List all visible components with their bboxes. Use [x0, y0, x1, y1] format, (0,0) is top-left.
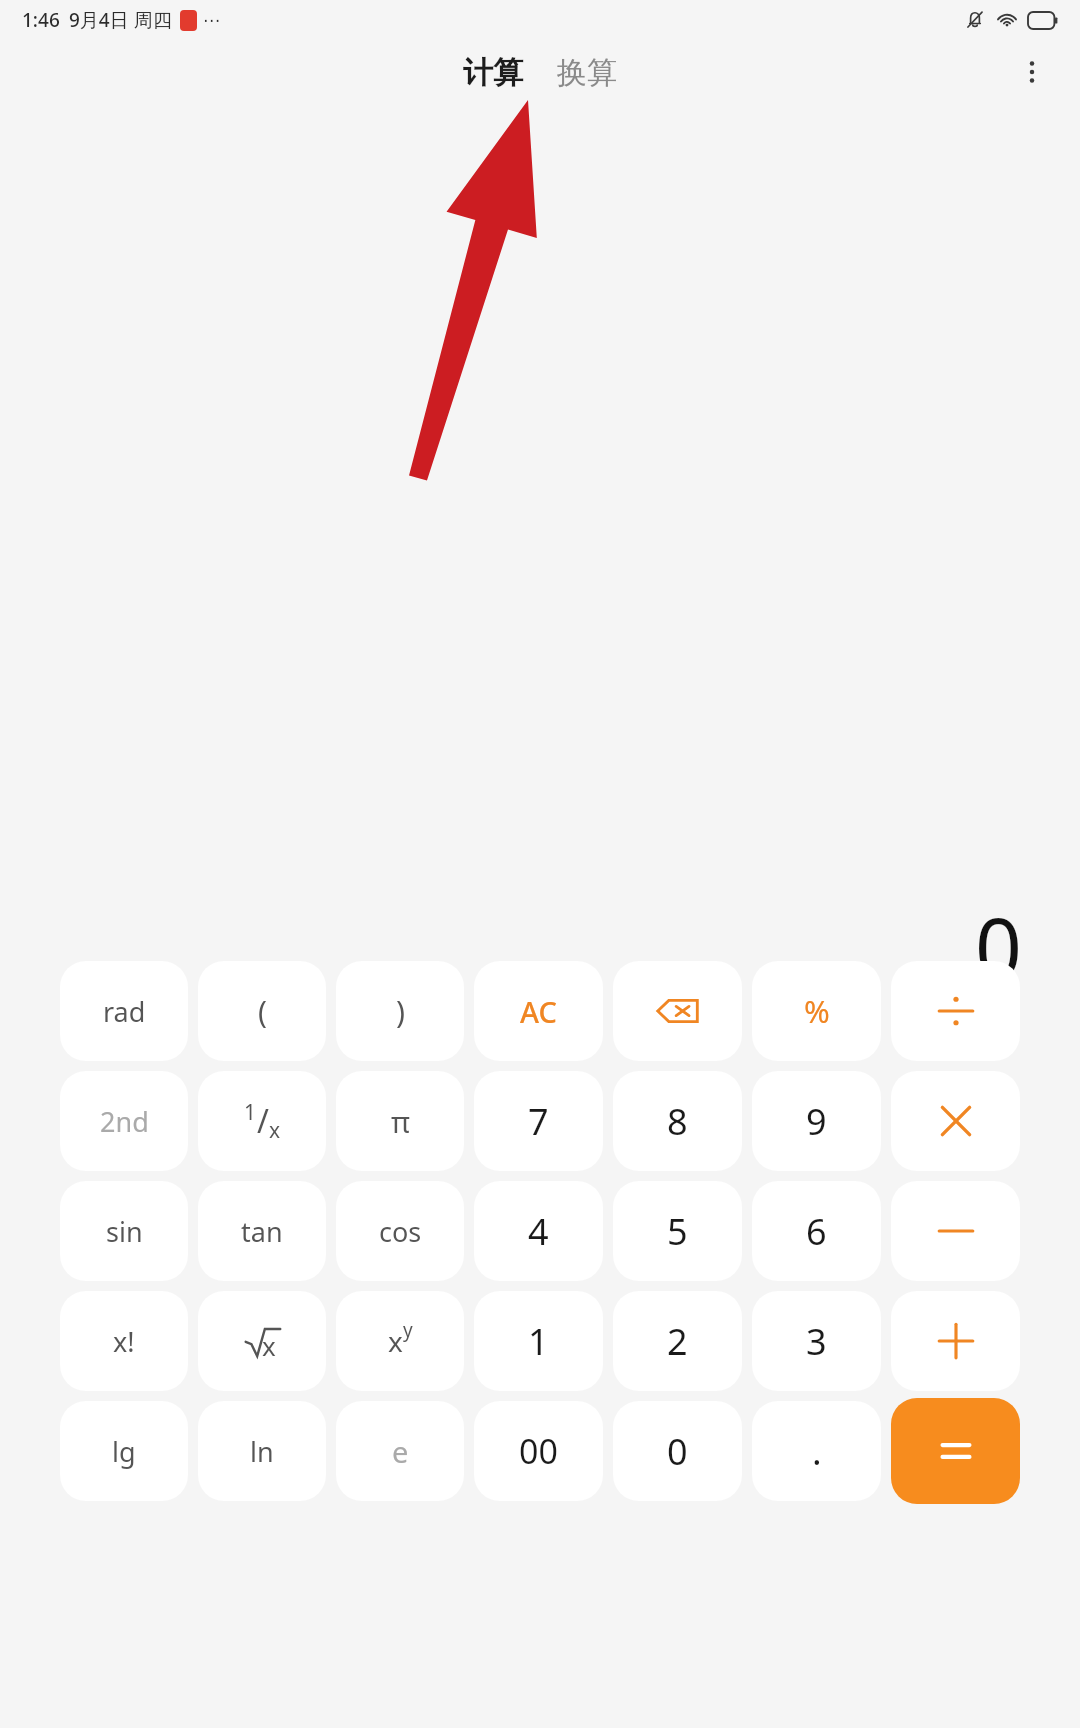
button[interactable]: ): [336, 961, 464, 1061]
staticText: rad: [103, 993, 146, 1030]
button[interactable]: 2nd: [60, 1071, 188, 1171]
staticText: 计算: [463, 54, 523, 92]
button[interactable]: 0: [613, 1401, 742, 1501]
button[interactable]: Plus: [891, 1291, 1020, 1391]
staticText: π: [391, 1102, 410, 1141]
staticText: /: [257, 1099, 269, 1143]
staticText: 1: [528, 1317, 549, 1366]
staticText: x!: [113, 1323, 135, 1360]
staticText: 9: [806, 1097, 827, 1146]
button[interactable]: lg: [60, 1401, 188, 1501]
staticText: 9月4日 周四: [69, 7, 172, 33]
button[interactable]: Power: [336, 1291, 464, 1391]
staticText: 2nd: [100, 1103, 149, 1140]
button[interactable]: 7: [474, 1071, 603, 1171]
button[interactable]: e: [336, 1401, 464, 1501]
staticText: 0: [975, 890, 1022, 1000]
staticText: 7: [528, 1097, 549, 1146]
button[interactable]: 9: [752, 1071, 881, 1171]
button[interactable]: rad: [60, 961, 188, 1061]
button[interactable]: π: [336, 1071, 464, 1171]
button[interactable]: Reciprocal: [198, 1071, 326, 1171]
button[interactable]: Square root: [198, 1291, 326, 1391]
staticText: (: [258, 991, 267, 1032]
button[interactable]: 换算: [549, 48, 625, 98]
button[interactable]: 计算: [455, 48, 531, 98]
staticText: 00: [519, 1428, 558, 1474]
button[interactable]: Equals: [891, 1398, 1020, 1504]
button[interactable]: sin: [60, 1181, 188, 1281]
button[interactable]: 1: [474, 1291, 603, 1391]
staticText: 5: [667, 1207, 688, 1256]
button[interactable]: cos: [336, 1181, 464, 1281]
button[interactable]: 2: [613, 1291, 742, 1391]
button[interactable]: 3: [752, 1291, 881, 1391]
staticText: x: [262, 1328, 276, 1363]
staticText: 换算: [557, 54, 617, 92]
staticText: cos: [379, 1213, 422, 1250]
staticText: ): [396, 991, 405, 1032]
staticText: 3: [806, 1317, 827, 1366]
button[interactable]: x!: [60, 1291, 188, 1391]
button[interactable]: 6: [752, 1181, 881, 1281]
staticText: sin: [106, 1213, 143, 1250]
staticText: 0: [667, 1427, 688, 1476]
staticText: lg: [112, 1433, 136, 1470]
button[interactable]: AC: [474, 961, 603, 1061]
button[interactable]: Backspace: [613, 961, 742, 1061]
staticText: 8: [667, 1097, 688, 1146]
staticText: x: [269, 1116, 281, 1145]
staticText: 2: [667, 1317, 688, 1366]
button[interactable]: 5: [613, 1181, 742, 1281]
button[interactable]: More options: [1004, 44, 1060, 100]
button[interactable]: Minus: [891, 1181, 1020, 1281]
button[interactable]: tan: [198, 1181, 326, 1281]
staticText: ln: [250, 1433, 274, 1470]
button[interactable]: Multiply: [891, 1071, 1020, 1171]
staticText: AC: [520, 992, 557, 1031]
staticText: x: [388, 1322, 403, 1360]
staticText: ⋯: [203, 10, 220, 30]
staticText: 6: [806, 1207, 827, 1256]
staticText: e: [392, 1432, 409, 1471]
button[interactable]: 4: [474, 1181, 603, 1281]
button[interactable]: 00: [474, 1401, 603, 1501]
button[interactable]: Divide: [891, 961, 1020, 1061]
button[interactable]: .: [752, 1401, 881, 1501]
staticText: 4: [528, 1207, 549, 1256]
staticText: 1:46: [22, 7, 60, 33]
button[interactable]: ln: [198, 1401, 326, 1501]
staticText: 1: [244, 1098, 257, 1127]
button[interactable]: %: [752, 961, 881, 1061]
button[interactable]: (: [198, 961, 326, 1061]
staticText: y: [403, 1317, 413, 1343]
staticText: .: [812, 1427, 822, 1476]
button[interactable]: 8: [613, 1071, 742, 1171]
staticText: %: [804, 990, 830, 1032]
staticText: tan: [241, 1213, 283, 1250]
